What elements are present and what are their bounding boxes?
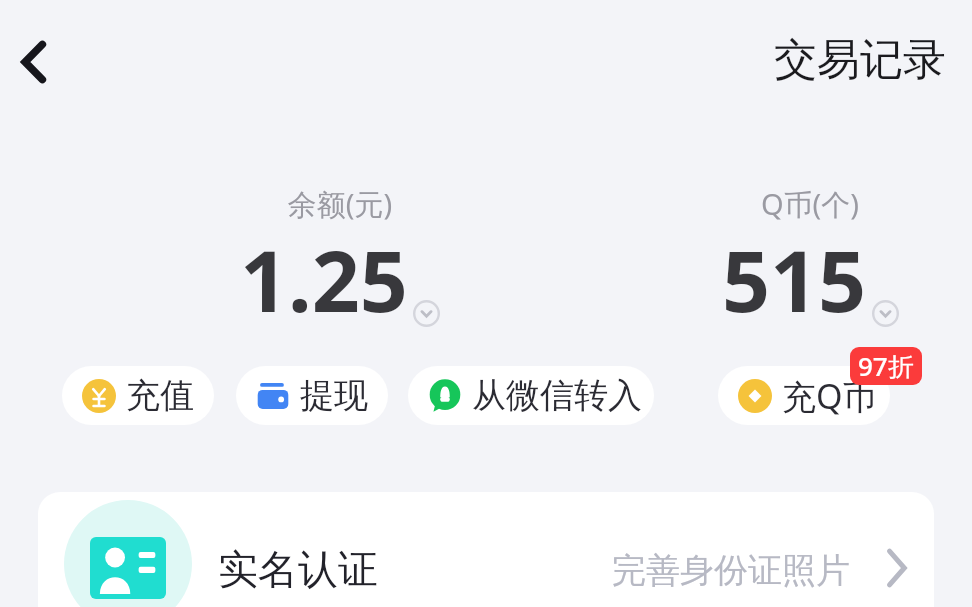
staticText: 充值 bbox=[126, 374, 194, 417]
button[interactable]: Q币(个) bbox=[680, 182, 940, 332]
button[interactable]: 余额(元) bbox=[210, 182, 470, 332]
staticText: 余额(元) bbox=[210, 184, 470, 224]
button[interactable]: 提现 bbox=[236, 366, 388, 425]
staticText: 交易记录 bbox=[774, 33, 946, 87]
button[interactable]: 充Q币 bbox=[718, 366, 890, 425]
staticText: Q币(个) bbox=[680, 184, 940, 224]
button[interactable]: Back bbox=[4, 26, 64, 98]
staticText: 提现 bbox=[300, 374, 368, 417]
staticText: 515 bbox=[722, 222, 867, 336]
staticText: 充Q币 bbox=[782, 373, 877, 419]
staticText: 97折 bbox=[858, 348, 914, 384]
staticText: 1.25 bbox=[240, 222, 408, 336]
staticText: 完善身份证照片 bbox=[612, 549, 850, 592]
button[interactable]: 实名认证 bbox=[38, 492, 934, 607]
staticText: 实名认证 bbox=[218, 544, 378, 594]
button[interactable]: 从微信转入 bbox=[408, 366, 654, 425]
staticText: 从微信转入 bbox=[472, 374, 642, 417]
button[interactable]: 充值 bbox=[62, 366, 214, 425]
